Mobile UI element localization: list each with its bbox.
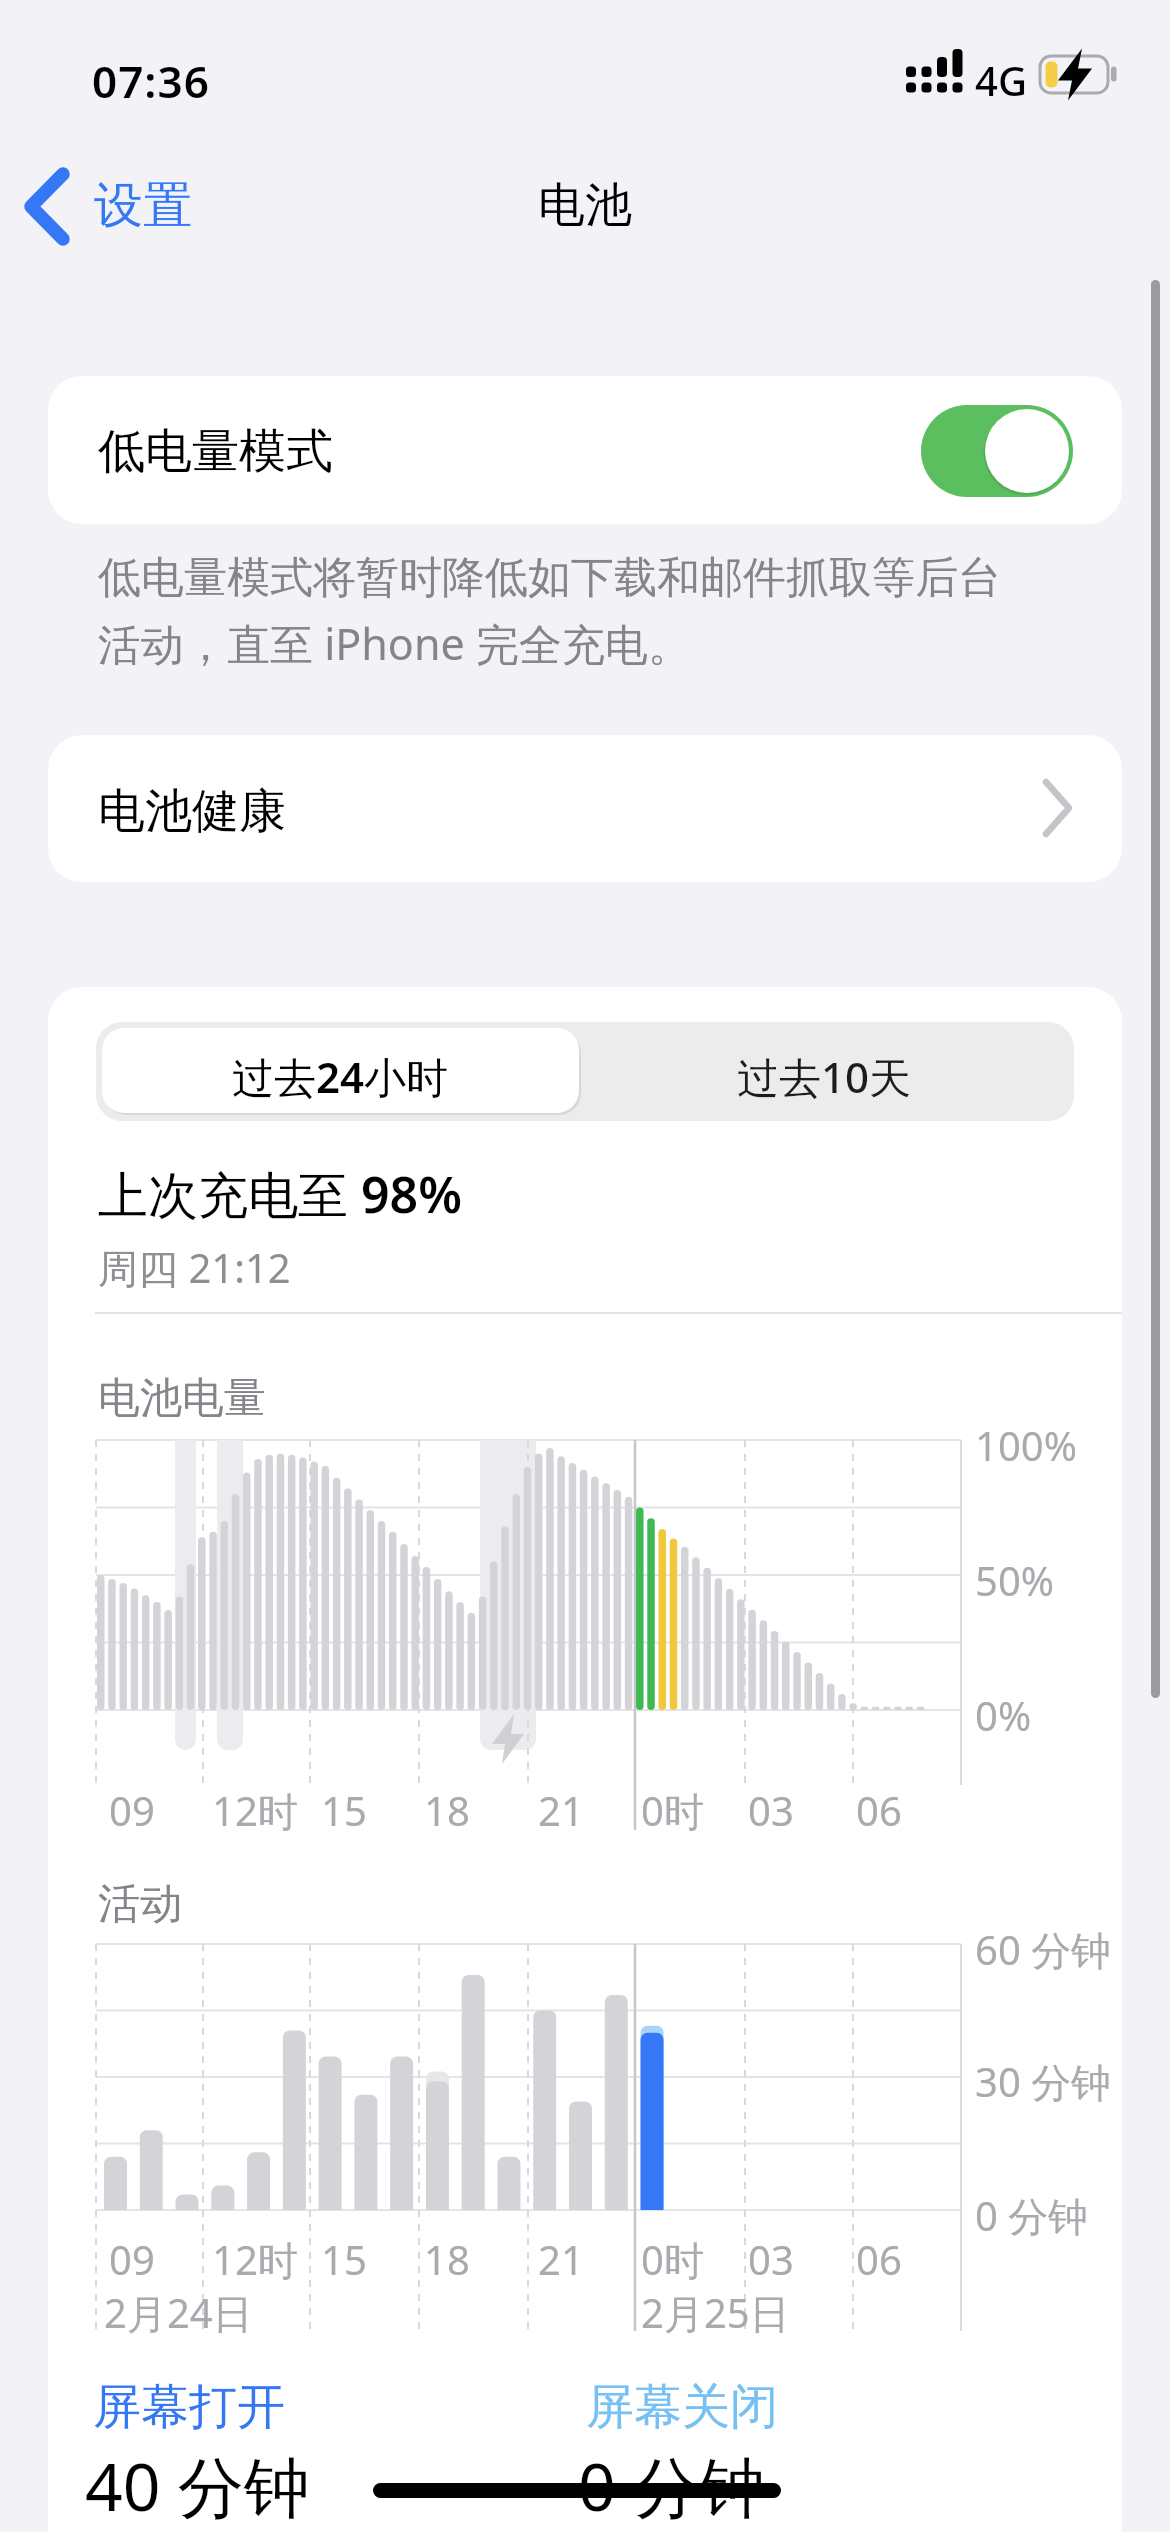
staticText: 0时 bbox=[641, 1783, 704, 1838]
staticText: 4G bbox=[975, 53, 1027, 107]
button[interactable] bbox=[580, 1028, 1070, 1115]
staticText: 06 bbox=[856, 1783, 902, 1837]
staticText: 低电量模式将暂时降低如下载和邮件抓取等后台 bbox=[98, 551, 1001, 605]
staticText: 电池电量 bbox=[98, 1372, 266, 1425]
staticText: 设置 bbox=[94, 175, 192, 237]
staticText: 过去24小时 bbox=[232, 1048, 449, 1105]
staticText: 0% bbox=[975, 1688, 1032, 1742]
staticText: 2月25日 bbox=[641, 2285, 790, 2340]
staticText: 50% bbox=[975, 1553, 1054, 1607]
staticText: 上次充电至 98% bbox=[98, 1160, 462, 1228]
staticText: 21 bbox=[538, 1783, 584, 1837]
staticText: 周四 21:12 bbox=[98, 1240, 291, 1295]
staticText: 06 bbox=[856, 2232, 902, 2286]
button[interactable] bbox=[921, 405, 1073, 497]
button[interactable] bbox=[48, 735, 1122, 882]
staticText: 屏幕关闭 bbox=[586, 2377, 778, 2437]
staticText: 15 bbox=[321, 2232, 367, 2286]
staticText: 过去10天 bbox=[737, 1048, 912, 1105]
staticText: 低电量模式 bbox=[98, 422, 333, 481]
staticText: 活动，直至 iPhone 完全充电。 bbox=[98, 614, 691, 673]
staticText: 屏幕打开 bbox=[93, 2377, 285, 2437]
staticText: 12时 bbox=[212, 2232, 298, 2287]
staticText: 电池健康 bbox=[98, 782, 286, 841]
staticText: 03 bbox=[748, 1783, 794, 1837]
staticText: 30 分钟 bbox=[975, 2054, 1112, 2109]
staticText: 07:36 bbox=[92, 51, 210, 111]
staticText: 09 bbox=[109, 2232, 155, 2286]
staticText: 03 bbox=[748, 2232, 794, 2286]
staticText: 60 分钟 bbox=[975, 1922, 1112, 1977]
staticText: 电池 bbox=[538, 176, 632, 235]
staticText: 0时 bbox=[641, 2232, 704, 2287]
staticText: 09 bbox=[109, 1783, 155, 1837]
staticText: 40 分钟 bbox=[85, 2440, 310, 2530]
button[interactable] bbox=[25, 165, 215, 250]
staticText: 12时 bbox=[212, 1783, 298, 1838]
staticText: 21 bbox=[538, 2232, 584, 2286]
staticText: 0 分钟 bbox=[975, 2188, 1089, 2243]
staticText: 18 bbox=[424, 1783, 470, 1837]
staticText: 100% bbox=[975, 1418, 1077, 1472]
staticText: 18 bbox=[424, 2232, 470, 2286]
button[interactable] bbox=[102, 1028, 579, 1113]
staticText: 2月24日 bbox=[104, 2285, 253, 2340]
staticText: 15 bbox=[321, 1783, 367, 1837]
staticText: 0 分钟 bbox=[578, 2440, 765, 2530]
button[interactable] bbox=[48, 376, 1122, 524]
staticText: 活动 bbox=[98, 1878, 182, 1931]
